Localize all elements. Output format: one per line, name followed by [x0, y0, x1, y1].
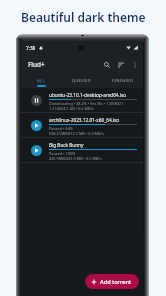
- button[interactable]: Pause: [21, 88, 143, 113]
- staticText: Paused • 100%: [49, 151, 76, 156]
- button[interactable]: Resume: [31, 145, 42, 156]
- staticText: Downloading • 28.2% • 9m 36s • 120/8021: [49, 101, 124, 106]
- button[interactable]: Resume: [21, 138, 143, 163]
- staticText: 1.21GB/4.5 GB • 6.6 MB/s: [49, 106, 94, 111]
- button[interactable]: Add torrent: [85, 274, 139, 289]
- staticText: Paused • 64%: [49, 126, 73, 131]
- staticText: archlinux-2023.12.01-x86_64.iso: [49, 117, 120, 123]
- staticText: Add torrent: [100, 278, 132, 286]
- staticText: 425.9MB/425.9 MB • 0.0 MB/s: [49, 156, 102, 161]
- button[interactable]: Sort: [114, 58, 128, 72]
- button[interactable]: Resume: [31, 120, 42, 131]
- button[interactable]: Resume: [21, 113, 143, 138]
- staticText: Flud+: [28, 60, 45, 69]
- staticText: Big Buck Bunny: [49, 142, 84, 148]
- staticText: QUEUED: [72, 78, 91, 84]
- button[interactable]: FINISHED: [102, 75, 143, 88]
- button[interactable]: ALL: [21, 75, 61, 88]
- staticText: FINISHED: [112, 78, 134, 84]
- staticText: 7:38: [26, 45, 36, 51]
- staticText: ALL: [37, 78, 45, 84]
- button[interactable]: More options: [128, 58, 141, 71]
- staticText: 558.21MB/872.3 MB • 0.0 MB/s: [49, 131, 104, 136]
- button[interactable]: QUEUED: [61, 75, 102, 88]
- button[interactable]: Search: [100, 58, 114, 72]
- button[interactable]: Pause: [31, 95, 42, 106]
- staticText: ubuntu-23.10.1-desktop-amd64.iso: [49, 92, 127, 98]
- staticText: Beautiful dark theme: [21, 9, 146, 25]
